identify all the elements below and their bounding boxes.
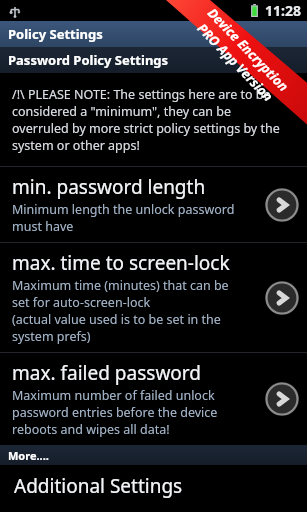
staticText: /!\ PLEASE NOTE: The settings here are t… (12, 86, 271, 103)
staticText: password entries before the device (12, 404, 218, 421)
button[interactable]: More.... (0, 445, 307, 465)
button[interactable]: max. time to screen-lock (0, 243, 307, 352)
button[interactable]: min. password length (0, 167, 307, 242)
staticText: More.... (8, 448, 49, 463)
staticText: must have (12, 218, 74, 235)
button[interactable]: Open (265, 188, 299, 222)
staticText: PRO App Version (194, 19, 277, 105)
staticText: max. time to screen-lock (12, 250, 230, 276)
staticText: Password Policy Settings (8, 51, 169, 69)
staticText: overruled by more strict policy settings… (12, 120, 280, 137)
staticText: set for auto-screen-lock (12, 294, 151, 311)
staticText: Maximum time (minutes) that can be (12, 277, 229, 294)
button[interactable]: max. failed password attempts (0, 353, 307, 445)
button[interactable]: Open (265, 281, 299, 315)
staticText: considered a "minimum", they can be (12, 103, 232, 120)
staticText: min. password length (12, 174, 206, 200)
staticText: system prefs) (12, 328, 91, 345)
staticText: Policy Settings (8, 25, 103, 43)
button[interactable]: Policy Settings (0, 21, 307, 47)
staticText: Maximum number of failed unlock (12, 387, 215, 404)
staticText: reboots and wipes all data! (12, 421, 170, 438)
button[interactable]: Open (265, 382, 299, 416)
staticText: Device Encryption (204, 4, 293, 95)
staticText: (actual value used is to be set in the (12, 311, 221, 328)
button[interactable]: Password Policy Settings (0, 47, 307, 73)
staticText: max. failed password attempts (12, 360, 261, 386)
staticText: system or other apps! (12, 137, 140, 154)
staticText: 11:28 (265, 1, 301, 20)
staticText: Minimum length the unlock password (12, 201, 235, 218)
staticText: Additional Settings (14, 473, 183, 499)
